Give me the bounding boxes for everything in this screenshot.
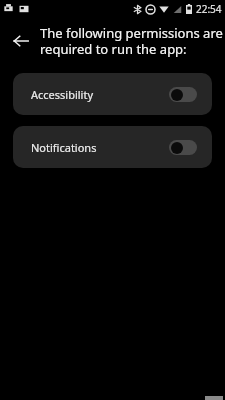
staticText: Notifications [31,140,97,155]
button[interactable]: Toggle [169,87,197,102]
button[interactable]: Back [6,26,36,56]
button[interactable]: Toggle [169,140,197,155]
button[interactable]: Accessibility [13,73,212,115]
staticText: 22:54 [196,2,222,16]
staticText: The following permissions are required t… [40,24,223,57]
staticText: Accessibility [31,87,94,102]
button[interactable]: Notifications [13,126,212,168]
